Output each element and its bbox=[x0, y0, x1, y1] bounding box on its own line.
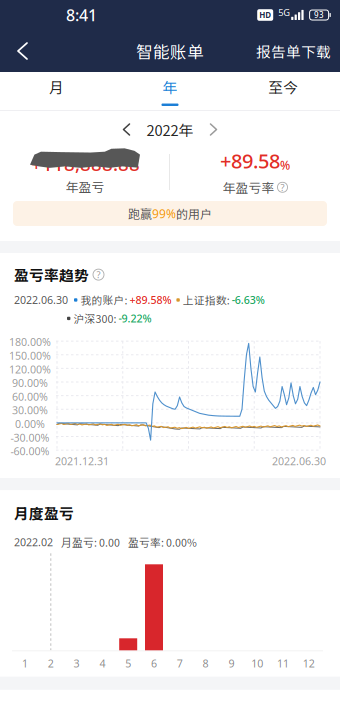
staticText: 5G bbox=[278, 6, 290, 19]
staticText: 年 bbox=[162, 76, 177, 97]
staticText: -30.00% bbox=[10, 430, 49, 445]
staticText: 2 bbox=[48, 656, 54, 670]
staticText: 99% bbox=[152, 205, 176, 221]
staticText: +89.58 bbox=[220, 147, 280, 174]
staticText: 至今 bbox=[268, 76, 298, 97]
staticText: 0.00% bbox=[15, 417, 45, 431]
button[interactable]: Next year bbox=[205, 119, 221, 140]
staticText: % bbox=[280, 157, 290, 173]
staticText: 报告单下载 bbox=[256, 40, 331, 62]
button[interactable]: 报告单下载 bbox=[246, 27, 340, 75]
staticText: ? bbox=[280, 181, 284, 193]
staticText: +118,888.88 bbox=[31, 151, 140, 176]
staticText: 30.00% bbox=[12, 403, 48, 417]
staticText: ? bbox=[96, 268, 100, 281]
staticText: 沪深300: bbox=[73, 311, 116, 326]
staticText: 7 bbox=[177, 656, 183, 670]
staticText: 4 bbox=[99, 656, 105, 670]
staticText: 11 bbox=[277, 656, 289, 670]
staticText: 3 bbox=[74, 656, 80, 670]
staticText: -60.00% bbox=[10, 444, 49, 458]
staticText: 150.00% bbox=[9, 348, 51, 363]
staticText: 8 bbox=[203, 656, 209, 670]
staticText: 2022.02 bbox=[14, 535, 53, 549]
staticText: 月 bbox=[49, 76, 64, 97]
staticText: 12 bbox=[303, 656, 315, 670]
staticText: 月度盈亏 bbox=[14, 502, 74, 523]
staticText: 上证指数: bbox=[183, 292, 230, 308]
staticText: 180.00% bbox=[9, 335, 51, 349]
staticText: 盈亏率趋势 bbox=[14, 264, 89, 285]
staticText: 智能账单 bbox=[136, 39, 204, 63]
staticText: 跑赢 bbox=[128, 205, 152, 222]
staticText: 年盈亏率 bbox=[222, 178, 274, 196]
staticText: 月盈亏: 0.00 bbox=[61, 534, 120, 550]
staticText: 10 bbox=[251, 656, 263, 670]
staticText: 9 bbox=[228, 656, 234, 670]
staticText: 90.00% bbox=[12, 376, 48, 390]
staticText: -6.63% bbox=[232, 293, 265, 307]
staticText: 5 bbox=[125, 656, 131, 670]
staticText: 93 bbox=[314, 10, 324, 20]
staticText: 我的账户: bbox=[80, 292, 127, 308]
staticText: 2022年 bbox=[146, 119, 193, 140]
staticText: 2022.06.30 bbox=[272, 454, 326, 468]
button[interactable]: 至今 bbox=[227, 72, 340, 110]
staticText: HD bbox=[259, 10, 271, 20]
staticText: 120.00% bbox=[9, 362, 51, 376]
staticText: 1 bbox=[22, 656, 28, 670]
staticText: +89.58% bbox=[129, 293, 171, 307]
staticText: 2021.12.31 bbox=[55, 454, 109, 468]
button[interactable]: Back bbox=[0, 31, 41, 71]
button[interactable]: 年 bbox=[113, 72, 227, 110]
staticText: 2022.06.30 bbox=[14, 293, 68, 307]
staticText: 的用户 bbox=[176, 205, 212, 222]
staticText: 60.00% bbox=[12, 389, 48, 404]
staticText: 年盈亏 bbox=[65, 177, 104, 196]
button[interactable]: 月 bbox=[0, 72, 113, 110]
staticText: 8:41 bbox=[66, 4, 97, 26]
staticText: -9.22% bbox=[118, 311, 151, 325]
staticText: 6 bbox=[151, 656, 157, 670]
button[interactable]: Previous year bbox=[118, 119, 134, 140]
staticText: 盈亏率: 0.00% bbox=[128, 534, 197, 550]
